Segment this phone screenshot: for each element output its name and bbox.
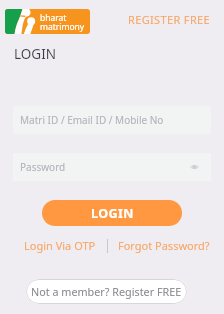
button[interactable]: Show password [186,159,202,175]
staticText: Not a member? Register FREE [31,284,182,299]
button[interactable]: LOGIN [42,200,182,226]
button[interactable]: Login Via OTP [20,235,100,256]
staticText: Matri ID / Email ID / Mobile No [20,113,164,127]
button[interactable]: REGISTER FREE [126,9,213,30]
staticText: Login Via OTP [24,238,96,253]
staticText: REGISTER FREE [128,12,211,27]
button[interactable]: Matri ID / Email ID / Mobile No [13,106,211,134]
button[interactable]: BharatMatrimony [5,9,90,34]
button[interactable]: Forgot Password? [114,235,214,256]
button[interactable]: Not a member? Register FREE [26,279,187,304]
button[interactable]: Password [13,153,211,181]
staticText: LOGIN [14,45,57,63]
staticText: bharat [40,12,67,24]
staticText: Password [20,160,66,174]
staticText: Forgot Password? [118,238,210,253]
staticText: LOGIN [91,205,134,222]
staticText: matrimony [40,21,85,33]
